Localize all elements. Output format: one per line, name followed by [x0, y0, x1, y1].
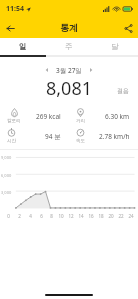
staticText: 일 [19, 42, 27, 51]
staticText: 94 분 [45, 132, 61, 141]
staticText: 9,000 [1, 155, 12, 160]
staticText: 0 [7, 213, 10, 219]
staticText: 6,000 [1, 173, 12, 178]
button[interactable]: Share [118, 18, 138, 38]
staticText: 걸음 [117, 87, 129, 95]
staticText: 4 [29, 213, 32, 219]
staticText: 6.30 km [105, 112, 130, 121]
staticText: 10 [58, 213, 64, 219]
button[interactable]: 시간 [0, 126, 69, 146]
button[interactable]: Next day [85, 64, 97, 76]
staticText: 8 [50, 213, 53, 219]
staticText: 2 [18, 213, 21, 219]
button[interactable]: 달 [92, 38, 138, 55]
staticText: 6 [40, 213, 43, 219]
staticText: 달 [111, 42, 119, 51]
staticText: 269 kcal [36, 112, 61, 121]
staticText: 11:54 [6, 4, 24, 14]
staticText: 12 [68, 213, 74, 219]
staticText: 20 [108, 213, 114, 219]
staticText: 16 [88, 213, 94, 219]
staticText: 22 [118, 213, 124, 219]
button[interactable]: 거리 [69, 106, 138, 126]
button[interactable]: Previous day [41, 64, 53, 76]
button[interactable]: 일 [0, 38, 46, 55]
staticText: 8,081 [46, 76, 93, 100]
button[interactable]: 속도 [69, 126, 138, 146]
staticText: 거리 [76, 118, 85, 124]
staticText: 18 [98, 213, 104, 219]
button[interactable]: 칼로리 [0, 106, 69, 126]
staticText: 속도 [76, 138, 85, 144]
staticText: 2.78 km/h [99, 132, 130, 141]
button[interactable]: 주 [46, 38, 92, 55]
staticText: 시간 [7, 138, 16, 144]
staticText: 통계 [60, 22, 78, 33]
staticText: 3,000 [1, 190, 12, 195]
staticText: 3월 27일 [56, 66, 82, 75]
staticText: 14 [78, 213, 84, 219]
staticText: 24 [128, 213, 134, 219]
staticText: 주 [65, 42, 73, 51]
button[interactable]: Back [0, 18, 20, 38]
staticText: 칼로리 [7, 118, 21, 124]
